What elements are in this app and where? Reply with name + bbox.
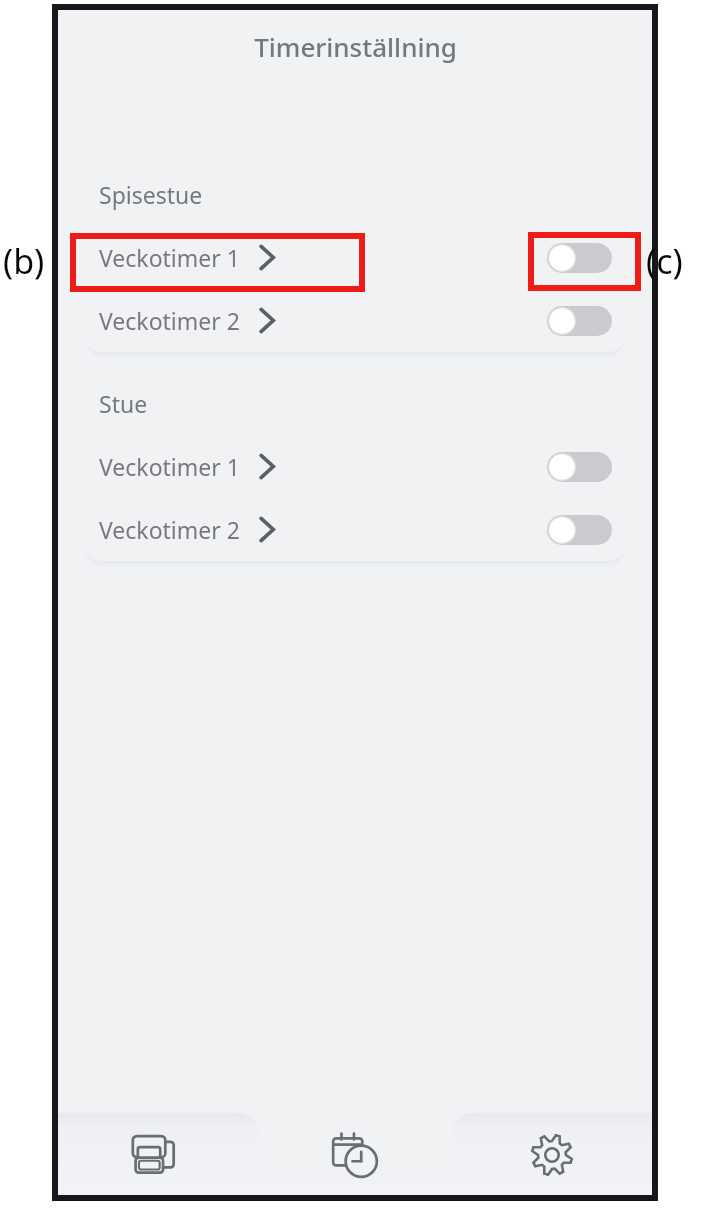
button[interactable]: Toggle Veckotimer 2 xyxy=(547,306,612,336)
staticText: Timerinställning xyxy=(254,29,457,64)
staticText: (c) xyxy=(646,238,683,284)
button[interactable]: Veckotimer 2 xyxy=(83,506,289,553)
button[interactable]: Timer settings xyxy=(258,1109,452,1195)
staticText: (b) xyxy=(3,238,45,284)
staticText: Veckotimer 1 xyxy=(99,242,240,273)
staticText: Veckotimer 1 xyxy=(99,451,240,482)
button[interactable]: Veckotimer 1 xyxy=(83,443,289,490)
button[interactable]: Toggle Veckotimer 1 xyxy=(547,452,612,482)
button[interactable]: Toggle Veckotimer 1 xyxy=(547,243,612,273)
button[interactable]: Toggle Veckotimer 2 xyxy=(547,515,612,545)
staticText: Veckotimer 2 xyxy=(99,514,240,545)
button[interactable]: Devices xyxy=(58,1109,258,1195)
button[interactable]: Veckotimer 2 xyxy=(83,297,289,344)
staticText: Stue xyxy=(99,388,148,419)
staticText: Veckotimer 2 xyxy=(99,305,240,336)
staticText: Spisestue xyxy=(99,179,203,210)
button[interactable]: Settings xyxy=(452,1109,652,1195)
button[interactable]: Veckotimer 1 xyxy=(83,234,289,281)
